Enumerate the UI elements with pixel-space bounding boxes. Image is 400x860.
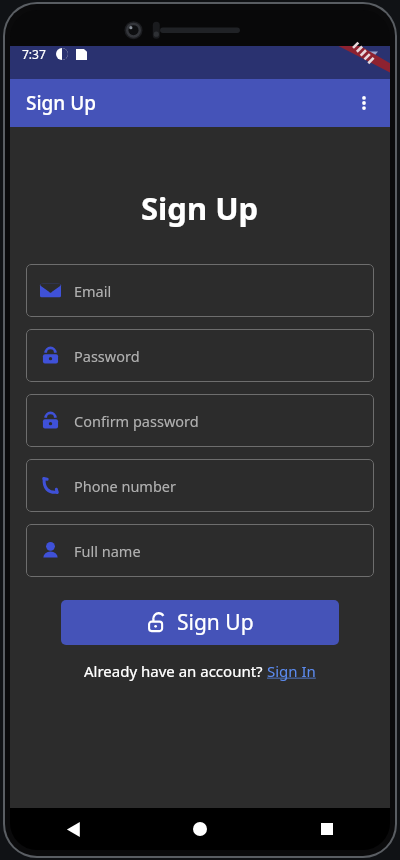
button[interactable]: Recent apps [303,808,351,850]
staticText: Phone number [74,476,176,496]
button[interactable]: Confirm password [26,394,374,447]
staticText: Sign Up [26,90,97,116]
button[interactable]: Full name [26,524,374,577]
staticText: Email [74,281,112,301]
button[interactable]: Back [49,808,97,850]
button[interactable]: Sign In [267,661,316,681]
button[interactable]: Home [176,808,224,850]
staticText: Password [74,346,140,366]
button[interactable]: Email [26,264,374,317]
staticText: Confirm password [74,411,199,431]
staticText: Already have an account? [84,661,267,681]
staticText: Full name [74,541,141,561]
button[interactable]: More options [342,81,386,125]
button[interactable]: Sign Up [61,600,339,645]
staticText: Sign In [267,661,316,681]
staticText: Sign Up [177,608,254,637]
staticText: Sign Up [141,187,259,229]
button[interactable]: Password [26,329,374,382]
staticText: 7:37 [22,46,46,62]
button[interactable]: Phone number [26,459,374,512]
